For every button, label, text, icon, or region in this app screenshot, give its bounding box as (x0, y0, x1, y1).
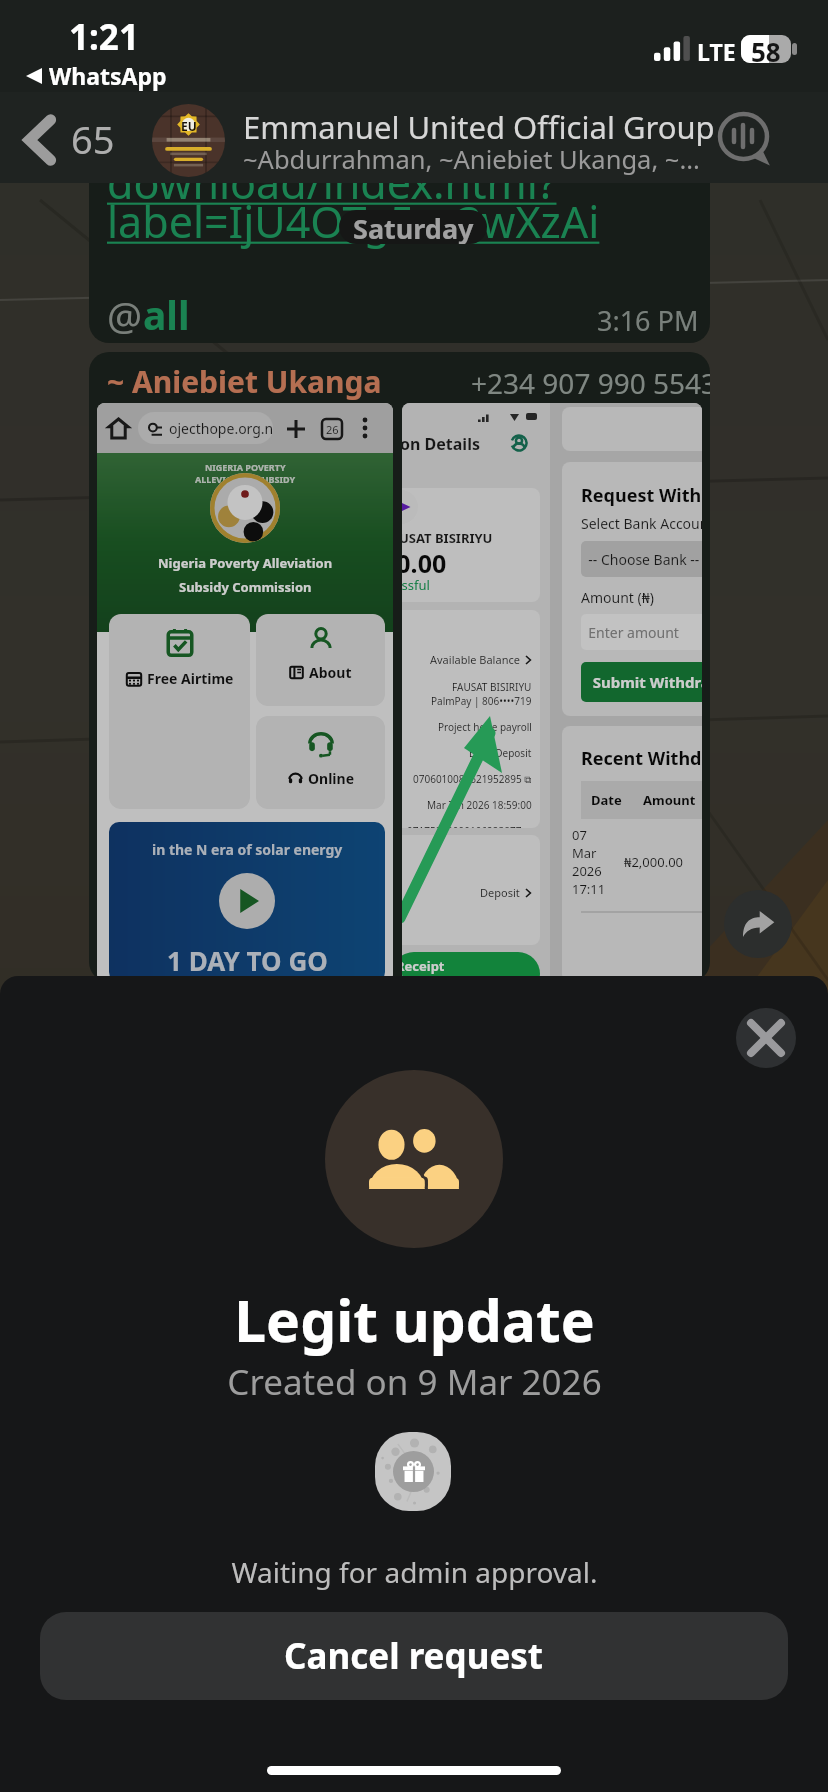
staticText: ₦2,000.00 (624, 853, 684, 871)
staticText: Mar 7th 2026 18:59:00 (427, 798, 532, 812)
staticText: ojecthope.org.ng (169, 419, 273, 438)
staticText: NIGERIA POVERTY (205, 461, 286, 473)
button[interactable]: Close (736, 1008, 796, 1068)
staticText: 0706010088621952895 ⧉ (413, 772, 532, 786)
button[interactable]: Back (8, 108, 72, 172)
staticText: Free Airtime (147, 669, 234, 688)
staticText: 3wXzAi (457, 192, 600, 251)
staticText: PalmPay | 806••••719 (431, 694, 532, 708)
staticText: Amount (₦) (581, 588, 654, 607)
staticText: Legit update (234, 1281, 595, 1359)
staticText: FAUSAT BISIRIYU (452, 680, 532, 694)
staticText: -- Choose Bank -- (581, 550, 700, 569)
staticText: Waiting for admin approval. (231, 1553, 598, 1591)
staticText: WhatsApp (49, 60, 167, 91)
staticText: About (309, 663, 352, 682)
staticText: 00.00 (402, 546, 447, 580)
staticText: Recent Withdrawals (581, 746, 702, 771)
staticText: 3:16 PM (597, 302, 699, 339)
staticText: COMMISSION (214, 485, 276, 497)
staticText: Request Withdrawal (581, 483, 702, 508)
staticText: 65 (71, 113, 115, 165)
staticText: Date (591, 791, 622, 809)
staticText: 58 (751, 34, 781, 62)
button[interactable]: Voice chat (714, 108, 776, 170)
staticText: Bank Deposit (469, 746, 532, 760)
staticText: Cancel request (284, 1632, 544, 1680)
staticText: +234 907 990 5543 (471, 364, 710, 402)
staticText: Nigeria Poverty Alleviation (158, 554, 333, 572)
staticText: on Details (402, 433, 480, 455)
staticText: Online (308, 769, 354, 788)
staticText: Select Bank Account (581, 514, 702, 533)
staticText: Created on 9 Mar 2026 (227, 1358, 602, 1406)
staticText: ~ Aniebiet Ukanga (107, 361, 382, 402)
staticText: 1:21 (69, 13, 139, 61)
staticText: EU (181, 118, 197, 134)
staticText: Enter amount (581, 623, 679, 642)
staticText: LTE (697, 36, 736, 67)
staticText: 1 DAY TO GO (167, 943, 328, 978)
button[interactable]: Forward (724, 890, 792, 958)
staticText: cessful (402, 576, 430, 594)
staticText: ALLEVIATION SUBSIDY (195, 473, 296, 485)
staticText: 2026 (572, 862, 602, 880)
staticText: ~Abdurrahman, ~Aniebiet Ukanga, ~... (243, 142, 700, 177)
staticText: Amount (643, 791, 696, 809)
staticText: all (143, 288, 190, 341)
staticText: download/index.html? (107, 153, 557, 212)
staticText: Receipt (402, 957, 445, 975)
staticText: Emmanuel United Official Group (243, 106, 715, 148)
staticText: label=IjU4OTg5 (107, 192, 415, 251)
staticText: Deposit (480, 885, 520, 900)
staticText: Available Balance (430, 652, 520, 667)
staticText: 17:11 (572, 880, 606, 898)
staticText: @ (107, 288, 143, 341)
staticText: 07175859090106223877 ⧉ (407, 824, 532, 828)
staticText: Mar (572, 844, 597, 862)
staticText: Submit Withdrawal (581, 672, 702, 692)
button[interactable]: Cancel request (40, 1612, 788, 1700)
staticText: AUSAT BISIRIYU (402, 529, 493, 547)
staticText: 26 (326, 422, 339, 437)
staticText: Saturday (353, 210, 474, 244)
staticText: Subsidy Commission (179, 578, 312, 596)
staticText: in the N era of solar energy (152, 840, 343, 859)
staticText: Project hope payroll (438, 720, 532, 734)
staticText: 07 (572, 826, 587, 844)
